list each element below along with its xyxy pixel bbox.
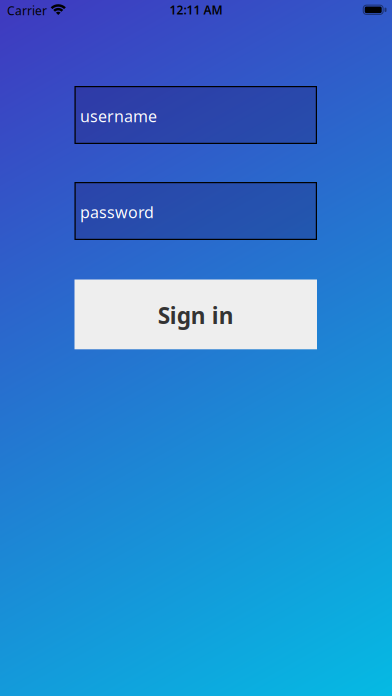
button[interactable]: username	[74, 86, 317, 144]
staticText: Carrier	[7, 2, 47, 18]
button[interactable]: Sign in	[74, 279, 317, 349]
staticText: password	[80, 201, 154, 223]
staticText: 12:11 AM	[169, 2, 222, 18]
staticText: Sign in	[158, 300, 234, 330]
button[interactable]: password	[74, 182, 317, 240]
staticText: username	[80, 105, 157, 127]
